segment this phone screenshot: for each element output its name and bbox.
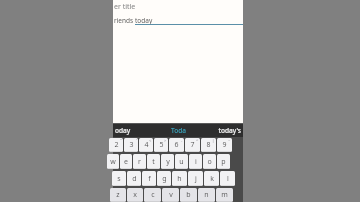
- staticText: i: [195, 157, 197, 167]
- button[interactable]: Key h: [172, 171, 187, 186]
- staticText: >: [164, 138, 167, 143]
- staticText: today: [135, 16, 153, 25]
- staticText: t: [152, 157, 155, 167]
- staticText: r: [138, 157, 141, 167]
- staticText: 8: [206, 140, 211, 150]
- staticText: 7: [190, 140, 195, 150]
- staticText: today's: [202, 126, 241, 135]
- staticText: ": [120, 138, 122, 143]
- staticText: 2: [114, 140, 119, 150]
- staticText: -: [181, 138, 183, 143]
- staticText: n: [204, 190, 209, 200]
- staticText: |: [212, 138, 215, 143]
- button[interactable]: Key l: [220, 171, 235, 186]
- staticText: z: [116, 190, 120, 200]
- button[interactable]: Key n: [198, 188, 215, 202]
- staticText: h: [177, 174, 182, 184]
- staticText: riends: [114, 16, 135, 25]
- button[interactable]: Key i: [189, 154, 202, 169]
- staticText: j: [195, 174, 197, 184]
- staticText: g: [162, 174, 167, 184]
- button[interactable]: Key c: [144, 188, 161, 202]
- staticText: p: [221, 157, 226, 167]
- button[interactable]: Key g: [157, 171, 171, 186]
- button[interactable]: Key f: [142, 171, 156, 186]
- staticText: ~: [228, 138, 231, 143]
- button[interactable]: Key y: [161, 154, 174, 169]
- button[interactable]: Key z: [110, 188, 126, 202]
- button[interactable]: Key 6: [169, 138, 184, 152]
- staticText: d: [132, 174, 137, 184]
- staticText: oday: [115, 126, 155, 135]
- staticText: o: [207, 157, 212, 167]
- button[interactable]: Key o: [203, 154, 216, 169]
- button[interactable]: Key j: [188, 171, 203, 186]
- staticText: x: [133, 190, 137, 200]
- staticText: e: [124, 157, 128, 167]
- button[interactable]: Key k: [204, 171, 219, 186]
- staticText: b: [186, 190, 191, 200]
- staticText: l: [227, 174, 229, 184]
- button[interactable]: Key 3: [124, 138, 138, 152]
- staticText: ': [136, 138, 137, 143]
- staticText: 5: [159, 140, 164, 150]
- staticText: u: [179, 157, 184, 167]
- button[interactable]: Key e: [120, 154, 132, 169]
- button[interactable]: today's: [200, 123, 243, 137]
- button[interactable]: Key b: [180, 188, 197, 202]
- staticText: 6: [174, 140, 179, 150]
- staticText: er title: [114, 2, 136, 12]
- staticText: y: [166, 157, 170, 167]
- button[interactable]: Key 5: [154, 138, 168, 152]
- staticText: 9: [222, 140, 227, 150]
- button[interactable]: Key p: [217, 154, 230, 169]
- button[interactable]: Key u: [175, 154, 188, 169]
- button[interactable]: Key v: [162, 188, 179, 202]
- button[interactable]: Key 4: [139, 138, 153, 152]
- staticText: m: [221, 190, 228, 200]
- button[interactable]: oday: [113, 123, 157, 137]
- staticText: 3: [129, 140, 134, 150]
- staticText: k: [210, 174, 214, 184]
- staticText: f: [148, 174, 151, 184]
- staticText: Toda: [159, 126, 198, 135]
- staticText: 4: [144, 140, 149, 150]
- button[interactable]: Key 2: [109, 138, 123, 152]
- button[interactable]: Key m: [216, 188, 233, 202]
- staticText: ^: [196, 138, 199, 143]
- button[interactable]: Key w: [107, 154, 119, 169]
- staticText: c: [151, 190, 155, 200]
- button[interactable]: Key 8: [201, 138, 216, 152]
- staticText: <: [149, 138, 152, 143]
- button[interactable]: Key x: [127, 188, 143, 202]
- button[interactable]: Key 7: [185, 138, 200, 152]
- staticText: w: [110, 157, 116, 167]
- button[interactable]: Key t: [147, 154, 160, 169]
- staticText: v: [169, 190, 173, 200]
- button[interactable]: Key d: [127, 171, 141, 186]
- button[interactable]: Key r: [133, 154, 146, 169]
- button[interactable]: Key s: [112, 171, 126, 186]
- button[interactable]: Toda: [157, 123, 200, 137]
- button[interactable]: Key 9: [217, 138, 232, 152]
- staticText: s: [117, 174, 121, 184]
